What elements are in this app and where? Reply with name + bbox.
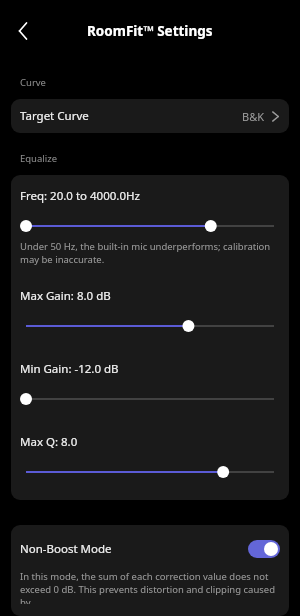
- button[interactable]: Slider: [20, 390, 280, 408]
- staticText: Under 50 Hz, the built-in mic underperfo…: [20, 240, 280, 266]
- staticText: Freq: 20.0 to 4000.0Hz: [20, 188, 140, 204]
- staticText: Curve: [20, 76, 46, 89]
- staticText: B&K: [242, 109, 265, 124]
- button[interactable]: Slider: [20, 463, 280, 481]
- staticText: In this mode, the sum of each correction…: [20, 570, 280, 604]
- staticText: RoomFit™ Settings: [87, 22, 213, 40]
- staticText: Max Q: 8.0: [20, 434, 78, 450]
- staticText: Equalize: [20, 152, 58, 165]
- staticText: Max Gain: 8.0 dB: [20, 288, 111, 304]
- staticText: Min Gain: -12.0 dB: [20, 361, 119, 377]
- other: Non-Boost Mode toggle: [248, 540, 280, 558]
- staticText: Non-Boost Mode: [20, 541, 112, 557]
- button[interactable]: Slider: [20, 217, 280, 235]
- button[interactable]: Non-Boost Mode: [20, 537, 280, 561]
- button[interactable]: Slider: [20, 317, 280, 335]
- button[interactable]: Target Curve: [11, 99, 289, 133]
- button[interactable]: Back: [6, 14, 40, 48]
- staticText: Target Curve: [20, 108, 89, 124]
